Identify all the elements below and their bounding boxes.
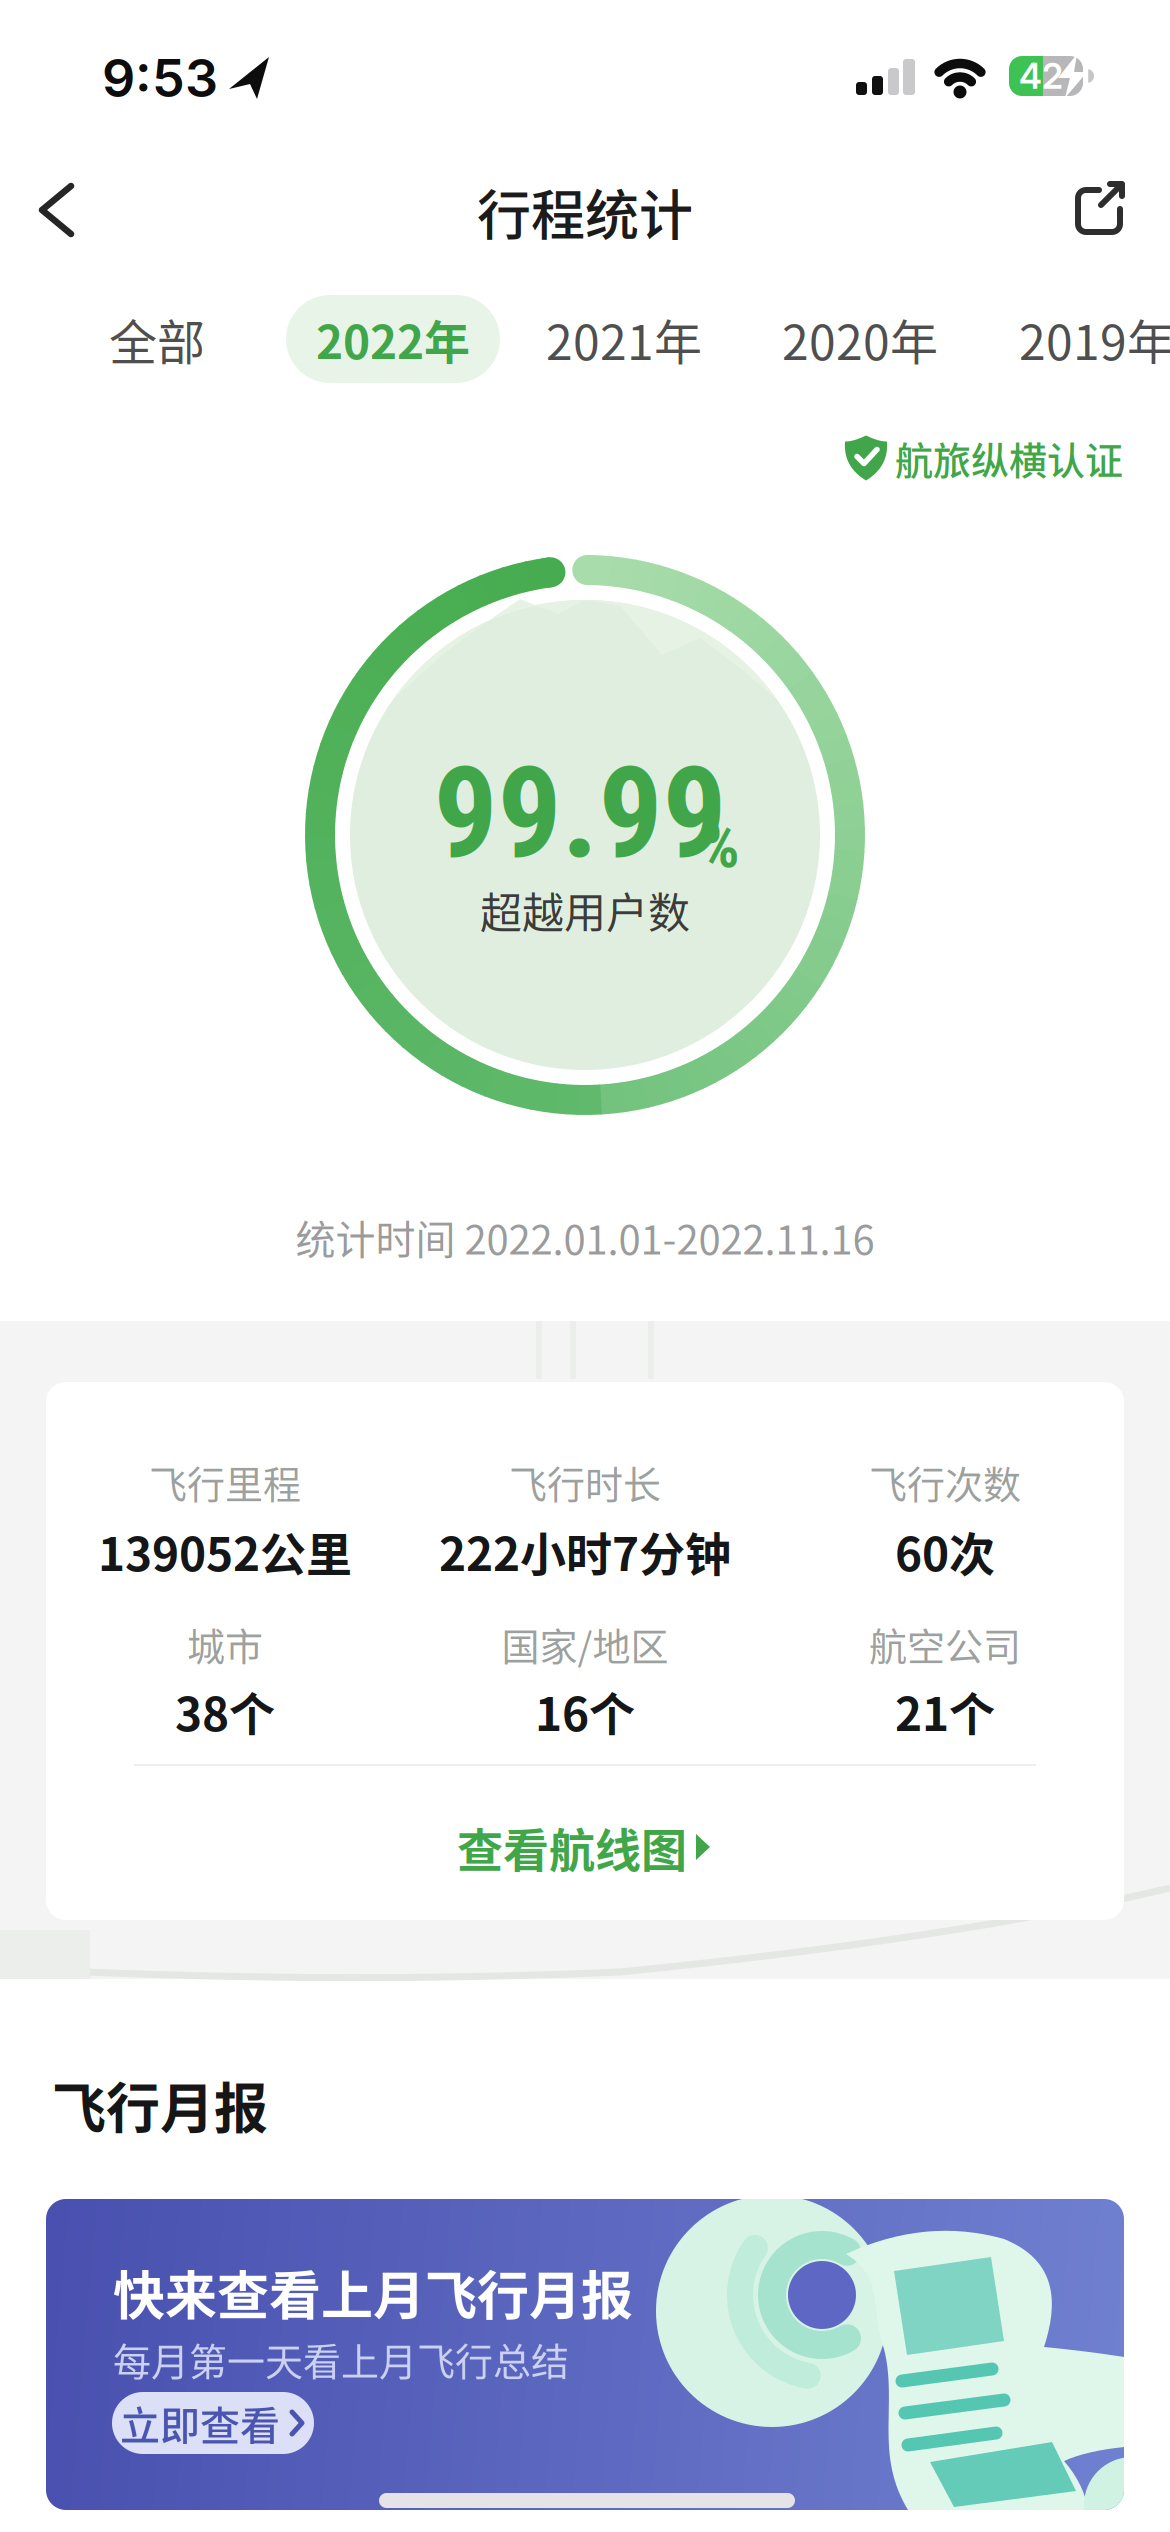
staticText: 城市 [187, 1616, 263, 1671]
staticText: 99.99 [433, 739, 726, 887]
button[interactable]: 2021年 [534, 295, 714, 383]
staticText: 立即查看 [120, 2394, 280, 2452]
staticText: 2020年 [782, 304, 938, 374]
staticText: 16个 [535, 1678, 635, 1744]
staticText: 航空公司 [869, 1616, 1021, 1671]
staticText: 每月第一天看上月飞行总结 [113, 2331, 569, 2386]
button[interactable]: 立即查看 [112, 2392, 314, 2454]
button[interactable]: 快来查看上月飞行月报 [46, 2199, 1124, 2510]
staticText: 139052公里 [98, 1518, 352, 1584]
staticText: 42 [1019, 55, 1063, 97]
staticText: 航旅纵横认证 [895, 430, 1123, 485]
staticText: 9:53 [102, 46, 218, 109]
staticText: 21个 [895, 1678, 995, 1744]
staticText: 全部 [109, 304, 205, 374]
staticText: 查看航线图 [457, 1814, 687, 1880]
button[interactable]: 2022年 [286, 295, 500, 383]
staticText: 行程统计 [477, 173, 693, 251]
staticText: 国家/地区 [501, 1616, 668, 1671]
staticText: 超越用户数 [480, 880, 690, 940]
staticText: 60次 [895, 1518, 995, 1584]
button[interactable]: 2020年 [770, 295, 950, 383]
button[interactable]: Share [1073, 179, 1129, 237]
staticText: 飞行月报 [52, 2066, 268, 2144]
staticText: 统计时间 2022.01.01-2022.11.16 [295, 1208, 874, 1266]
staticText: 222小时7分钟 [439, 1518, 731, 1584]
staticText: 飞行里程 [149, 1454, 301, 1509]
button[interactable]: 2019年 [1007, 295, 1170, 383]
button[interactable]: Back [35, 183, 79, 237]
staticText: 2019年 [1019, 304, 1170, 374]
staticText: 2021年 [546, 304, 702, 374]
staticText: % [700, 810, 740, 882]
staticText: 38个 [175, 1678, 275, 1744]
staticText: 快来查看上月飞行月报 [113, 2254, 633, 2330]
staticText: 飞行次数 [869, 1454, 1021, 1509]
button[interactable]: 全部 [87, 295, 227, 383]
staticText: 2022年 [316, 306, 470, 372]
staticText: 飞行时长 [509, 1454, 661, 1509]
button[interactable]: 查看航线图 [442, 1817, 742, 1877]
